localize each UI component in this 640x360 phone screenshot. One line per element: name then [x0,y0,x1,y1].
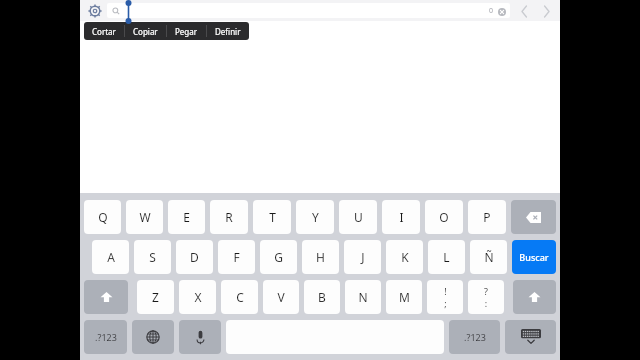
button[interactable]: .?123 [84,320,127,354]
button[interactable]: N [345,280,381,314]
button[interactable]: X [179,280,216,314]
button[interactable]: ? : [468,280,504,314]
button[interactable]: Dictate [179,320,221,354]
button[interactable]: R [210,200,248,234]
button[interactable]: Y [296,200,334,234]
staticText: K [401,249,409,265]
staticText: N [358,289,368,305]
button[interactable]: Settings [86,2,104,20]
button[interactable]: Backspace [511,200,556,234]
staticText: ? : [484,285,488,309]
button[interactable]: H [302,240,339,274]
staticText: Ñ [484,249,494,265]
staticText: A [107,249,115,265]
staticText: G [274,249,283,265]
staticText: S [149,249,156,265]
staticText: Q [98,209,108,225]
button[interactable]: Hide keyboard [505,320,556,354]
button[interactable]: Q [84,200,121,234]
staticText: J [361,249,365,265]
button[interactable]: P [468,200,506,234]
button[interactable]: Clear [497,7,506,16]
button[interactable]: 0 [107,3,510,18]
button[interactable]: L [428,240,465,274]
button[interactable]: Definir [207,22,249,40]
staticText: U [354,209,363,225]
button[interactable]: U [339,200,377,234]
staticText: ! ; [444,285,447,309]
staticText: X [194,289,202,305]
button[interactable]: C [221,280,258,314]
button[interactable]: M [386,280,422,314]
button[interactable]: Buscar [512,240,556,274]
button[interactable]: O [425,200,463,234]
button[interactable]: D [176,240,213,274]
button[interactable]: V [263,280,299,314]
staticText: O [439,209,449,225]
staticText: F [233,249,240,265]
button[interactable]: Z [137,280,174,314]
button[interactable]: Shift right [513,280,556,314]
staticText: Y [312,209,319,225]
button[interactable]: K [386,240,423,274]
button[interactable]: W [126,200,163,234]
button[interactable]: Pegar [167,22,206,40]
staticText: T [269,209,276,225]
staticText: D [190,249,199,265]
button[interactable]: Cortar [84,22,124,40]
staticText: L [443,249,450,265]
staticText: M [399,289,410,305]
staticText: P [483,209,491,225]
button[interactable]: T [253,200,291,234]
button[interactable]: Forward [538,2,554,20]
staticText: H [316,249,325,265]
button[interactable]: G [260,240,297,274]
button[interactable]: J [344,240,381,274]
staticText: R [225,209,233,225]
staticText: .?123 [464,331,486,343]
staticText: Copiar [133,26,158,37]
staticText: Definir [215,26,241,37]
button[interactable]: Change language [132,320,174,354]
button[interactable]: E [168,200,205,234]
button[interactable]: Ñ [470,240,507,274]
button[interactable]: A [92,240,129,274]
staticText: Pegar [175,26,198,37]
button[interactable]: ! ; [427,280,463,314]
button[interactable]: Copiar [125,22,166,40]
staticText: V [277,289,285,305]
staticText: B [318,289,326,305]
staticText: E [183,209,190,225]
staticText: .?123 [95,331,117,343]
button[interactable]: .?123 [449,320,500,354]
staticText: Z [152,289,159,305]
staticText: Cortar [92,26,116,37]
staticText: I [399,209,404,225]
button[interactable]: Shift [84,280,128,314]
button[interactable]: F [218,240,255,274]
button[interactable]: Back [516,2,532,20]
staticText: 0 [489,6,494,16]
staticText: W [139,209,151,225]
staticText: Buscar [519,251,549,263]
button[interactable]: B [304,280,340,314]
staticText: C [236,289,244,305]
button[interactable]: S [134,240,171,274]
button[interactable]: I [382,200,420,234]
